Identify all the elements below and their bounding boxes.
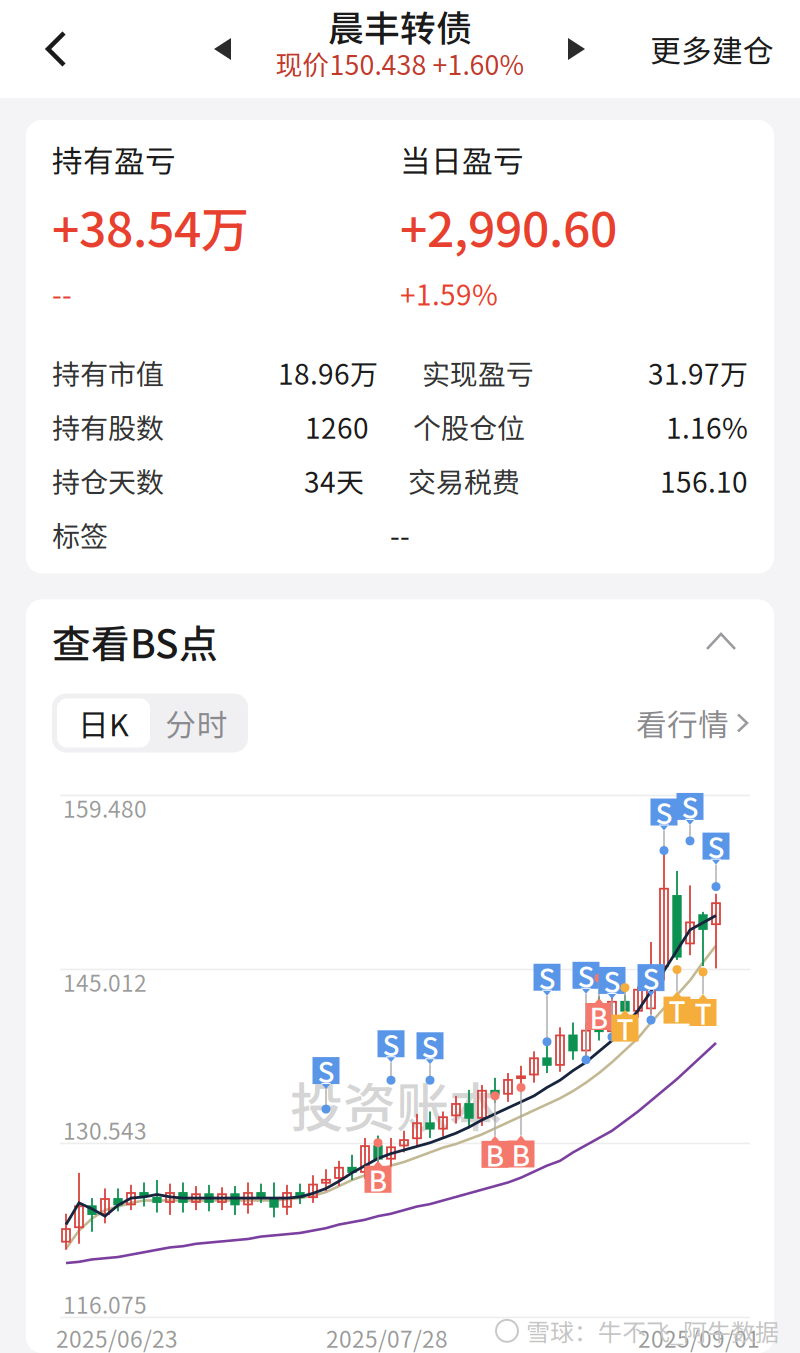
- staticText: 看行情: [636, 701, 729, 745]
- staticText: S: [603, 960, 620, 1001]
- staticText: 交易税费: [408, 460, 520, 501]
- staticText: 标签: [52, 514, 108, 555]
- staticText: S: [421, 1025, 438, 1066]
- staticText: T: [668, 990, 685, 1030]
- button[interactable]: Next: [550, 19, 604, 79]
- staticText: 查看BS点: [52, 613, 218, 669]
- staticText: 1260: [305, 406, 369, 447]
- staticText: S: [382, 1023, 399, 1064]
- staticText: 雪球：牛不飞_阿牛数据: [526, 1313, 779, 1348]
- staticText: 持有股数: [52, 406, 164, 447]
- staticText: S: [707, 826, 724, 866]
- staticText: --: [52, 273, 72, 313]
- staticText: 2025/06/23: [56, 1321, 178, 1353]
- staticText: 日K: [78, 701, 129, 745]
- staticText: B: [511, 1134, 530, 1174]
- staticText: +2,990.60: [400, 191, 617, 261]
- staticText: B: [368, 1159, 387, 1199]
- staticText: S: [681, 786, 698, 827]
- staticText: B: [589, 996, 608, 1037]
- staticText: 145.012: [63, 965, 147, 998]
- button[interactable]: Previous: [196, 19, 250, 79]
- staticText: 130.543: [63, 1113, 147, 1146]
- staticText: 2025/07/28: [326, 1321, 448, 1353]
- staticText: 分时: [165, 701, 227, 745]
- staticText: T: [694, 992, 711, 1033]
- button[interactable]: 分时: [150, 698, 243, 747]
- staticText: 实现盈亏: [422, 352, 534, 393]
- staticText: 当日盈亏: [400, 137, 524, 181]
- button[interactable]: 更多建仓: [628, 9, 800, 89]
- button[interactable]: 日K: [57, 698, 150, 747]
- staticText: 1.16%: [666, 406, 748, 447]
- staticText: T: [616, 1008, 633, 1048]
- staticText: 156.10: [660, 460, 748, 501]
- staticText: 159.480: [63, 791, 147, 824]
- staticText: --: [390, 514, 410, 555]
- staticText: 持有盈亏: [52, 137, 176, 181]
- staticText: 个股仓位: [413, 406, 525, 447]
- staticText: S: [655, 792, 672, 832]
- staticText: 晨丰转债: [328, 0, 472, 52]
- staticText: S: [642, 957, 659, 998]
- staticText: S: [577, 955, 594, 995]
- button[interactable]: Back: [0, 5, 89, 93]
- staticText: 持有市值: [52, 352, 164, 393]
- staticText: 2025/09/01: [638, 1321, 760, 1353]
- button[interactable]: Collapse: [694, 621, 748, 662]
- staticText: +1.59%: [400, 273, 498, 313]
- staticText: 34天: [304, 460, 364, 501]
- staticText: 更多建仓: [650, 27, 774, 71]
- staticText: B: [485, 1134, 504, 1175]
- staticText: 投资账本: [290, 1065, 502, 1143]
- staticText: +38.54万: [52, 191, 249, 261]
- staticText: 31.97万: [648, 352, 748, 393]
- button[interactable]: 看行情: [636, 701, 748, 745]
- staticText: S: [538, 957, 555, 997]
- staticText: 18.96万: [278, 352, 378, 393]
- staticText: S: [317, 1050, 334, 1091]
- staticText: 116.075: [63, 1287, 147, 1320]
- staticText: 持仓天数: [52, 460, 164, 501]
- staticText: 现价150.438 +1.60%: [275, 44, 524, 83]
